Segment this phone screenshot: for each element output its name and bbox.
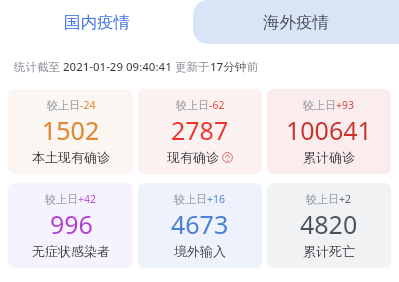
staticText: 2787 bbox=[171, 113, 229, 147]
staticText: 2021-01-29 09:40:41 bbox=[63, 59, 172, 75]
staticText: +93 bbox=[336, 98, 355, 112]
button[interactable]: 较上日 bbox=[138, 89, 262, 174]
staticText: 累计死亡 bbox=[303, 243, 355, 259]
staticText: +42 bbox=[78, 192, 97, 206]
staticText: 较上日 bbox=[176, 98, 209, 112]
staticText: +16 bbox=[207, 192, 226, 206]
button[interactable]: 海外疫情 bbox=[193, 0, 399, 44]
staticText: 较上日 bbox=[174, 192, 207, 206]
button[interactable]: 较上日 bbox=[267, 89, 391, 174]
button[interactable]: 较上日 bbox=[8, 183, 133, 268]
staticText: 境外输入 bbox=[174, 243, 226, 259]
button[interactable]: 较上日 bbox=[8, 89, 133, 174]
staticText: 较上日 bbox=[45, 192, 78, 206]
staticText: 较上日 bbox=[306, 192, 339, 206]
staticText: 国内疫情 bbox=[64, 12, 130, 33]
staticText: 17分钟 bbox=[210, 59, 247, 75]
staticText: +2 bbox=[339, 192, 352, 206]
staticText: 更新于 bbox=[172, 59, 210, 75]
staticText: 海外疫情 bbox=[263, 12, 329, 33]
staticText: 4673 bbox=[171, 207, 229, 241]
staticText: 较上日 bbox=[303, 98, 336, 112]
staticText: 前 bbox=[247, 60, 259, 74]
staticText: -24 bbox=[80, 98, 96, 112]
staticText: -62 bbox=[209, 98, 225, 112]
staticText: 100641 bbox=[286, 113, 372, 147]
button[interactable]: 说明 bbox=[222, 152, 233, 163]
staticText: 统计截至 bbox=[14, 59, 63, 75]
staticText: 996 bbox=[50, 207, 93, 241]
button[interactable]: 国内疫情 bbox=[0, 0, 193, 44]
staticText: 4820 bbox=[300, 207, 358, 241]
staticText: 现有确诊 bbox=[167, 149, 219, 165]
button[interactable]: 较上日 bbox=[138, 183, 262, 268]
staticText: 无症状感染者 bbox=[32, 243, 110, 259]
staticText: 本土现有确诊 bbox=[32, 149, 110, 165]
staticText: 较上日 bbox=[47, 98, 80, 112]
staticText: 累计确诊 bbox=[303, 149, 355, 165]
button[interactable]: 较上日 bbox=[267, 183, 391, 268]
staticText: 1502 bbox=[42, 113, 100, 147]
